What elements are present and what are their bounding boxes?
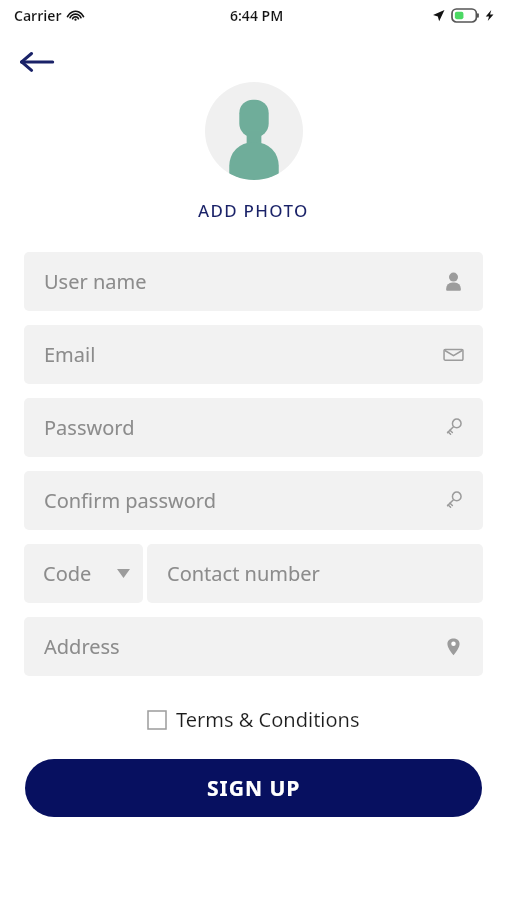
staticText: Carrier [14, 6, 62, 25]
button[interactable]: Add photo [205, 82, 303, 180]
staticText: User name [44, 268, 147, 295]
button[interactable]: Confirm password [24, 471, 483, 530]
staticText: Contact number [167, 560, 320, 587]
staticText: SIGN UP [207, 774, 301, 803]
button[interactable]: User name [24, 252, 483, 311]
staticText: 6:44 PM [230, 6, 284, 25]
button[interactable]: Password [24, 398, 483, 457]
button[interactable]: Back [8, 40, 64, 82]
button[interactable]: Code [24, 544, 143, 603]
button[interactable]: Email [24, 325, 483, 384]
staticText: Terms & Conditions [176, 706, 360, 733]
staticText: Confirm password [44, 487, 216, 514]
staticText: ADD PHOTO [198, 199, 309, 222]
staticText: Code [43, 560, 92, 587]
button[interactable]: Address [24, 617, 483, 676]
staticText: Address [44, 633, 120, 660]
button[interactable]: Terms & Conditions [142, 702, 366, 737]
button[interactable]: ADD PHOTO [192, 197, 315, 224]
button[interactable]: Contact number [147, 544, 483, 603]
staticText: Password [44, 414, 135, 441]
staticText: Email [44, 341, 96, 368]
button[interactable]: SIGN UP [25, 759, 482, 817]
